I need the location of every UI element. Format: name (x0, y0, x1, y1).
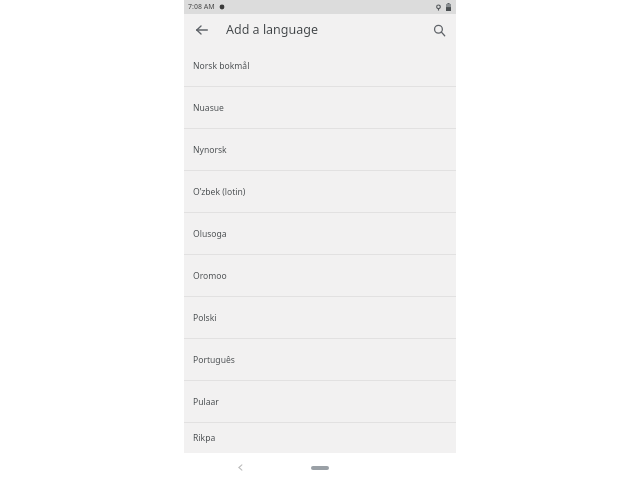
button[interactable]: O’zbek (lotin) (184, 171, 456, 212)
staticText: Add a language (226, 21, 319, 38)
staticText: Pulaar (193, 396, 219, 408)
button[interactable]: Nynorsk (184, 129, 456, 170)
button[interactable]: Português (184, 339, 456, 380)
button[interactable]: Search (425, 16, 453, 44)
button[interactable]: Polski (184, 297, 456, 338)
staticText: Nuasue (193, 102, 224, 114)
button[interactable]: Navigate up (188, 16, 216, 44)
staticText: Nynorsk (193, 144, 227, 156)
button[interactable]: Home (303, 460, 337, 476)
button[interactable]: Norsk bokmål (184, 45, 456, 86)
button[interactable]: Olusoga (184, 213, 456, 254)
staticText: Oromoo (193, 270, 227, 282)
button[interactable]: Nuasue (184, 87, 456, 128)
staticText: Polski (193, 312, 217, 324)
staticText: Olusoga (193, 228, 227, 240)
button[interactable]: Oromoo (184, 255, 456, 296)
button[interactable]: Rikpa (184, 423, 456, 453)
button[interactable]: Back (228, 455, 252, 479)
staticText: O’zbek (lotin) (193, 186, 246, 198)
staticText: Português (193, 354, 235, 366)
button[interactable]: Pulaar (184, 381, 456, 422)
staticText: Rikpa (193, 432, 216, 444)
staticText: 7:08 AM (188, 2, 215, 12)
staticText: Norsk bokmål (193, 60, 250, 72)
